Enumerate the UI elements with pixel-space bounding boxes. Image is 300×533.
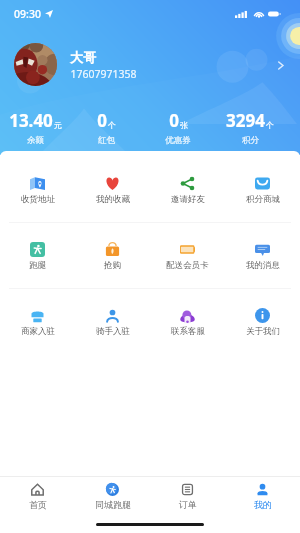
staticText: 联系客服 — [171, 326, 205, 337]
staticText: 个 — [108, 120, 116, 130]
staticText: 0 — [97, 109, 107, 132]
button[interactable]: 0 — [142, 109, 214, 146]
staticText: 0 — [169, 109, 179, 132]
button[interactable]: 邀请好友 — [150, 157, 225, 222]
button[interactable]: 查看个人资料 — [272, 57, 288, 73]
staticText: 积分 — [242, 135, 259, 146]
staticText: 个 — [266, 120, 274, 130]
staticText: 邀请好友 — [171, 194, 205, 205]
button[interactable]: 我的收藏 — [75, 157, 150, 222]
staticText: 商家入驻 — [21, 326, 55, 337]
staticText: 张 — [180, 120, 188, 130]
button[interactable]: 商家入驻 — [0, 289, 75, 354]
button[interactable]: 我的 — [225, 482, 300, 510]
button[interactable]: 关于我们 — [225, 289, 300, 354]
staticText: 跑腿 — [29, 260, 46, 271]
button[interactable]: 跑腿 — [0, 223, 75, 288]
staticText: 3294 — [226, 109, 265, 132]
staticText: 我的收藏 — [96, 194, 130, 205]
staticText: 余额 — [27, 135, 44, 146]
staticText: 收货地址 — [21, 194, 55, 205]
button[interactable]: 骑手入驻 — [75, 289, 150, 354]
button[interactable]: 首页 — [0, 482, 75, 510]
staticText: 09:30 — [14, 7, 41, 21]
button[interactable]: 配送会员卡 — [150, 223, 225, 288]
staticText: 优惠券 — [165, 135, 191, 146]
button[interactable]: 订单 — [150, 482, 225, 510]
staticText: 同城跑腿 — [95, 499, 131, 510]
button[interactable]: 3294 — [214, 109, 286, 146]
button[interactable]: 同城跑腿 — [75, 482, 150, 510]
staticText: 配送会员卡 — [166, 260, 209, 271]
button[interactable]: 大哥 — [14, 43, 288, 86]
staticText: 13.40 — [9, 109, 53, 132]
button[interactable]: 我的消息 — [225, 223, 300, 288]
staticText: 首页 — [29, 499, 47, 510]
button[interactable]: 抢购 — [75, 223, 150, 288]
staticText: 订单 — [179, 499, 197, 510]
staticText: 我的 — [254, 499, 272, 510]
staticText: 骑手入驻 — [96, 326, 130, 337]
staticText: 抢购 — [104, 260, 121, 271]
button[interactable]: 收货地址 — [0, 157, 75, 222]
staticText: 大哥 — [70, 49, 96, 65]
button[interactable]: 13.40 — [0, 109, 71, 146]
button[interactable]: 联系客服 — [150, 289, 225, 354]
staticText: 关于我们 — [246, 326, 280, 337]
staticText: 积分商城 — [246, 194, 280, 205]
staticText: 17607971358 — [70, 67, 137, 81]
staticText: 红包 — [98, 135, 115, 146]
button[interactable]: 积分商城 — [225, 157, 300, 222]
staticText: 元 — [54, 120, 62, 130]
staticText: 我的消息 — [246, 260, 280, 271]
button[interactable]: 0 — [71, 109, 142, 146]
